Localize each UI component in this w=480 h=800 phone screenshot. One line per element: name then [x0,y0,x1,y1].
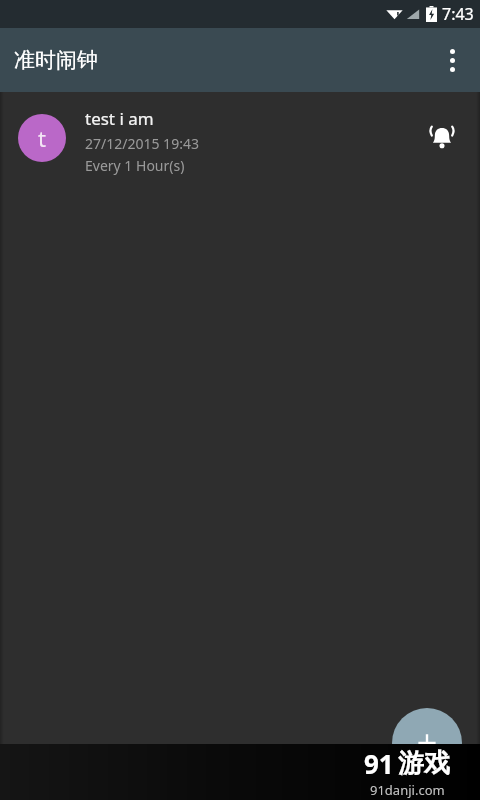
button[interactable]: More options [424,32,480,88]
staticText: 准时闹钟 [14,47,98,73]
staticText: 91danji.com [370,781,445,799]
staticText: 7:43 [442,3,474,25]
staticText: 27/12/2015 19:43 [85,134,199,153]
staticText: test i am [85,107,154,130]
staticText: t [38,123,46,153]
staticText: Every 1 Hour(s) [85,156,185,175]
staticText: 91 [364,746,394,781]
button[interactable]: t [0,92,480,192]
button[interactable]: Add alarm [392,708,462,778]
staticText: 游戏 [398,747,450,780]
button[interactable]: Toggle alarm [414,110,470,166]
